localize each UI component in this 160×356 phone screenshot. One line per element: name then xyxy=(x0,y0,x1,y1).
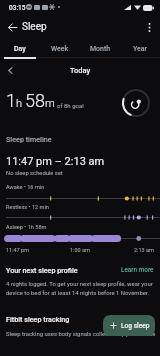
staticText: No sleep schedule set xyxy=(6,170,63,177)
button[interactable]: Week xyxy=(40,41,80,57)
staticText: Month xyxy=(90,45,111,53)
staticText: 11:47 pm – 2:13 am xyxy=(6,155,105,168)
button[interactable]: Year xyxy=(120,41,160,57)
button[interactable]: 1 xyxy=(0,85,160,125)
staticText: of 8h goal xyxy=(57,102,84,109)
staticText: 2:13 am xyxy=(134,247,154,253)
staticText: Awake • 16 min xyxy=(6,184,45,191)
button[interactable]: Learn more xyxy=(119,264,156,276)
staticText: Today xyxy=(70,66,91,75)
staticText: 03:15 xyxy=(9,4,26,12)
staticText: Sleep timeline xyxy=(6,135,52,143)
staticText: Sleep tracking uses body signals collect… xyxy=(6,331,156,338)
button[interactable]: Log sleep xyxy=(103,315,155,336)
button[interactable]: More options xyxy=(140,18,158,36)
staticText: 58 xyxy=(25,90,45,111)
staticText: Fitbit sleep tracking xyxy=(6,315,70,323)
staticText: 4 nights logged. To get your next sleep … xyxy=(6,281,160,297)
staticText: Restless • 12 min xyxy=(6,204,49,211)
button[interactable]: Day xyxy=(0,41,40,57)
staticText: Week xyxy=(51,45,69,53)
staticText: Day xyxy=(14,45,26,53)
staticText: Learn more xyxy=(121,266,154,274)
staticText: Asleep • 1h 58m xyxy=(6,224,47,231)
staticText: Year xyxy=(133,45,148,53)
staticText: 1:00 am xyxy=(70,247,90,253)
staticText: m xyxy=(45,97,55,110)
staticText: Sleep xyxy=(22,21,47,33)
staticText: Log sleep xyxy=(121,322,150,330)
button[interactable]: Back xyxy=(3,18,21,36)
staticText: 1 xyxy=(6,90,16,111)
staticText: h xyxy=(16,97,23,110)
button[interactable]: Month xyxy=(80,41,120,57)
staticText: 11:47 pm xyxy=(6,247,29,253)
staticText: Your next sleep profile xyxy=(6,266,78,274)
button[interactable]: Previous day xyxy=(2,62,18,78)
